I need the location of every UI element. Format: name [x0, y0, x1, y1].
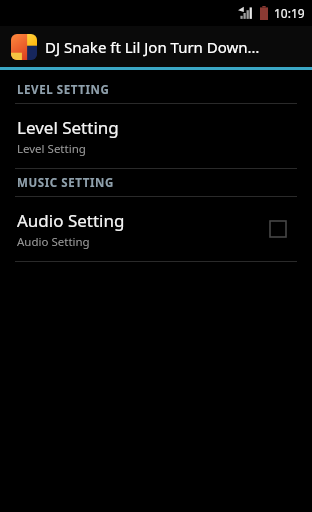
button[interactable]: Toggle Audio Setting: [261, 212, 295, 246]
staticText: Level Setting: [17, 141, 86, 157]
button[interactable]: Audio Setting: [0, 197, 312, 261]
staticText: MUSIC SETTING: [17, 175, 114, 191]
staticText: Level Setting: [17, 116, 119, 139]
button[interactable]: Level Setting: [0, 104, 312, 168]
staticText: DJ Snake ft Lil Jon Turn Down…: [45, 37, 260, 57]
staticText: Audio Setting: [17, 209, 125, 232]
staticText: 10:19: [274, 5, 305, 21]
staticText: LEVEL SETTING: [17, 82, 110, 98]
staticText: Audio Setting: [17, 234, 90, 250]
button[interactable]: DJ Snake ft Lil Jon Turn Down…: [0, 26, 312, 67]
